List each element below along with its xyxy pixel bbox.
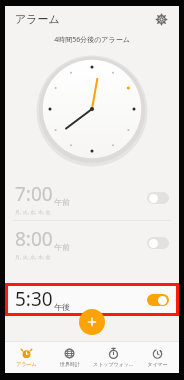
staticText: 午前 [54, 197, 70, 207]
button[interactable]: 5:30 [8, 286, 176, 313]
staticText: アラーム [15, 12, 60, 26]
button[interactable]: Alarm off [147, 192, 169, 204]
staticText: 世界時計 [60, 361, 80, 367]
staticText: ストップウォッ… [93, 361, 133, 368]
staticText: 月, 火, 水, 木, 金 [15, 254, 51, 261]
staticText: 午前 [54, 242, 70, 252]
button[interactable]: 7:00 [5, 176, 179, 220]
button[interactable]: Add alarm [79, 309, 105, 335]
button[interactable]: アラーム [5, 342, 48, 373]
staticText: 4時間56分後のアラーム [54, 35, 130, 45]
button[interactable]: ストップウォッ… [91, 342, 135, 373]
staticText: 午後 [54, 302, 70, 312]
button[interactable]: 8:00 [5, 221, 179, 265]
staticText: 7:00 [15, 181, 53, 207]
staticText: 月, 火, 水, 木, 金 [15, 209, 51, 216]
staticText: 5:30 [15, 286, 53, 312]
button[interactable]: Settings [151, 9, 171, 29]
staticText: 8:00 [15, 226, 53, 252]
button[interactable]: Alarm off [147, 237, 169, 249]
button[interactable]: Alarm on [147, 294, 169, 306]
staticText: タイマー [147, 361, 168, 367]
staticText: アラーム [16, 361, 37, 367]
button[interactable]: タイマー [135, 342, 179, 373]
button[interactable]: 世界時計 [48, 342, 91, 373]
